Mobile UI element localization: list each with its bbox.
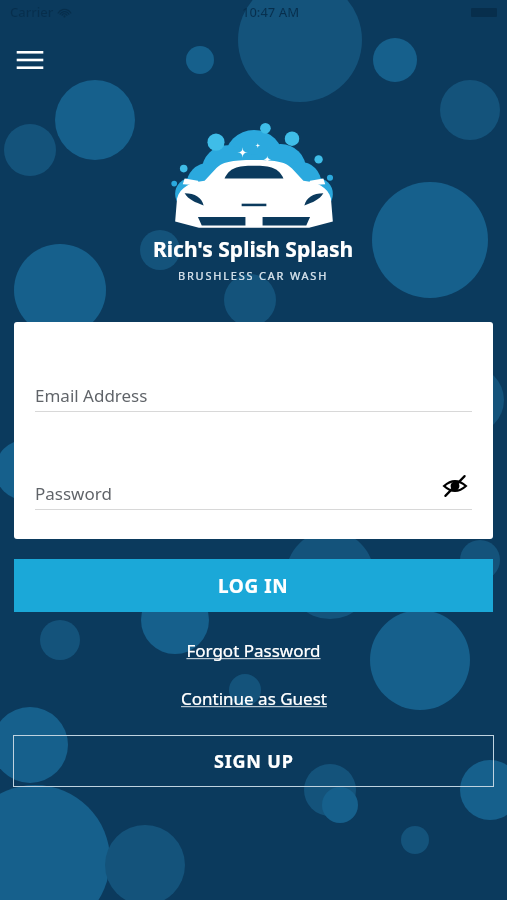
staticText: Rich's Splish Splash bbox=[153, 235, 354, 264]
staticText: Password bbox=[35, 482, 112, 505]
staticText: Carrier bbox=[10, 3, 54, 21]
button[interactable]: Email Address bbox=[14, 378, 493, 418]
staticText: SIGN UP bbox=[214, 749, 294, 774]
button[interactable]: Password bbox=[14, 476, 493, 516]
staticText: Email Address bbox=[35, 384, 148, 407]
button[interactable]: Continue as Guest bbox=[0, 681, 507, 715]
staticText: BRUSHLESS CAR WASH bbox=[178, 268, 329, 283]
button[interactable]: SIGN UP bbox=[13, 735, 494, 787]
staticText: Continue as Guest bbox=[181, 687, 327, 710]
button[interactable]: LOG IN bbox=[14, 559, 493, 612]
staticText: Forgot Password bbox=[186, 639, 321, 662]
staticText: LOG IN bbox=[218, 573, 289, 599]
button[interactable]: Menu bbox=[10, 40, 50, 80]
button[interactable]: Forgot Password bbox=[0, 633, 507, 667]
staticText: 10:47 AM bbox=[242, 3, 300, 21]
button[interactable]: Show password bbox=[431, 462, 479, 510]
